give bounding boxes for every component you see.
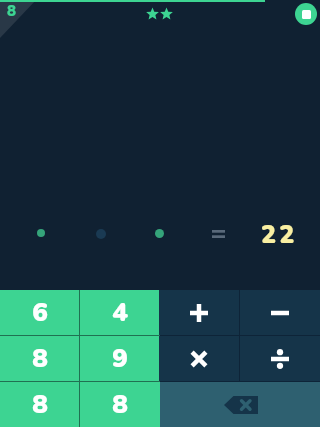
button[interactable]: 6 bbox=[0, 290, 79, 335]
button[interactable]: Backspace bbox=[160, 382, 320, 427]
button[interactable]: 4 bbox=[80, 290, 159, 335]
button[interactable]: Stop bbox=[295, 3, 317, 25]
button[interactable]: divide bbox=[240, 336, 320, 381]
button[interactable]: 9 bbox=[80, 336, 159, 381]
button[interactable]: 8 bbox=[0, 382, 79, 427]
staticText: 8 bbox=[32, 341, 48, 376]
staticText: 4 bbox=[112, 295, 128, 330]
staticText: 8 bbox=[32, 387, 48, 422]
staticText: 22 bbox=[261, 218, 298, 252]
staticText: 6 bbox=[32, 295, 48, 330]
button[interactable]: 8 bbox=[80, 382, 160, 427]
staticText: 8 bbox=[112, 387, 128, 422]
button[interactable]: minus bbox=[240, 290, 320, 335]
button[interactable]: plus bbox=[159, 290, 239, 335]
button[interactable]: 8 bbox=[0, 336, 79, 381]
staticText: 9 bbox=[112, 341, 128, 376]
button[interactable]: times bbox=[159, 336, 239, 381]
staticText: 8 bbox=[7, 1, 17, 21]
